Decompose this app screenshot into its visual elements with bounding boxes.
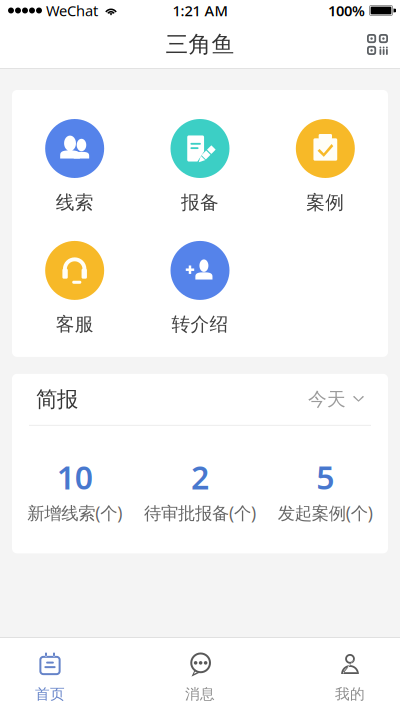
staticText: 转介绍: [171, 313, 228, 336]
staticText: 线索: [56, 191, 94, 214]
button[interactable]: 报备: [137, 119, 263, 214]
button[interactable]: 扫一扫: [355, 23, 400, 66]
staticText: 案例: [306, 191, 344, 214]
staticText: 我的: [335, 685, 365, 703]
staticText: 1:21 AM: [172, 1, 227, 20]
staticText: 首页: [35, 685, 65, 703]
button[interactable]: 我的: [320, 638, 380, 711]
staticText: 消息: [185, 685, 215, 703]
staticText: 简报: [36, 386, 78, 412]
button[interactable]: 转介绍: [137, 241, 263, 336]
staticText: 5: [316, 456, 334, 498]
staticText: 客服: [56, 313, 94, 336]
staticText: 2: [191, 456, 209, 498]
staticText: 三角鱼: [165, 31, 234, 58]
button[interactable]: 首页: [20, 638, 80, 711]
button[interactable]: 消息: [170, 638, 230, 711]
staticText: 新增线索(个): [27, 501, 122, 524]
staticText: 今天: [308, 388, 346, 411]
button[interactable]: 线索: [12, 119, 137, 214]
button[interactable]: 客服: [12, 241, 137, 336]
staticText: 发起案例(个): [278, 501, 373, 524]
staticText: WeChat: [46, 1, 98, 20]
staticText: 待审批报备(个): [144, 501, 256, 524]
staticText: 报备: [181, 191, 219, 214]
staticText: 100%: [328, 1, 365, 20]
button[interactable]: 今天: [308, 388, 364, 411]
staticText: 10: [57, 456, 93, 498]
button[interactable]: 案例: [263, 119, 388, 214]
